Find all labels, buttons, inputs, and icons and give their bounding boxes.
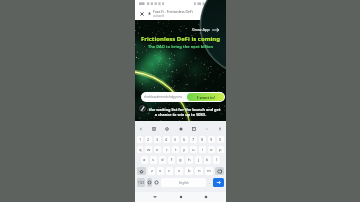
- staticText: 1: [139, 137, 142, 142]
- button[interactable]: c: [166, 167, 173, 175]
- staticText: 8: [201, 137, 204, 142]
- staticText: 2: [147, 137, 150, 142]
- staticText: us.fuse.fi: [153, 14, 164, 18]
- button[interactable]: q: [137, 146, 143, 153]
- staticText: m: [207, 168, 211, 174]
- button[interactable]: 9: [208, 136, 215, 143]
- button[interactable]: e: [154, 146, 161, 153]
- button[interactable]: 5: [172, 136, 179, 143]
- button[interactable]: 2: [145, 136, 152, 143]
- staticText: 4: [165, 137, 168, 142]
- button[interactable]: y: [181, 146, 188, 153]
- staticText: 9: [210, 137, 213, 142]
- staticText: g: [179, 157, 182, 163]
- button[interactable]: Keyboard tool: [203, 125, 211, 133]
- button[interactable]: d: [159, 156, 166, 164]
- staticText: q: [139, 147, 142, 153]
- button[interactable]: English: [161, 178, 206, 187]
- button[interactable]: a: [141, 156, 148, 164]
- staticText: h: [188, 157, 191, 163]
- button[interactable]: Grow App: [191, 26, 220, 33]
- button[interactable]: 0: [217, 136, 224, 143]
- staticText: English: [179, 181, 189, 185]
- staticText: c: [168, 168, 171, 174]
- staticText: 3: [156, 137, 159, 142]
- button[interactable]: p: [217, 146, 224, 153]
- staticText: shehbazahmedxhdgyneo: [144, 95, 182, 99]
- button[interactable]: v: [175, 167, 183, 175]
- button[interactable]: f: [168, 156, 175, 164]
- staticText: p: [219, 147, 222, 153]
- button[interactable]: Recent apps: [201, 192, 211, 202]
- button[interactable]: z: [148, 167, 155, 175]
- staticText: s: [152, 157, 155, 163]
- button[interactable]: 8: [199, 136, 206, 143]
- button[interactable]: Period: [208, 178, 211, 187]
- staticText: I want in!: [197, 95, 215, 100]
- staticText: Grow App: [192, 27, 210, 32]
- button[interactable]: Languages: [147, 178, 152, 187]
- staticText: l: [216, 157, 218, 163]
- staticText: b: [188, 168, 191, 174]
- staticText: k: [206, 157, 209, 163]
- button[interactable]: n: [195, 167, 203, 175]
- staticText: d: [161, 157, 164, 163]
- staticText: f: [171, 157, 173, 163]
- button[interactable]: h: [186, 156, 193, 164]
- button[interactable]: Shift: [137, 167, 146, 175]
- button[interactable]: ?123: [137, 178, 145, 187]
- staticText: r: [166, 147, 168, 153]
- button[interactable]: Backspace: [215, 167, 224, 175]
- button[interactable]: Keyboard tool: [216, 125, 224, 133]
- button[interactable]: Keyboard tool: [190, 125, 198, 133]
- staticText: z: [151, 168, 153, 174]
- button[interactable]: u: [190, 146, 197, 153]
- staticText: a: [143, 157, 146, 163]
- button[interactable]: Keyboard tool: [163, 125, 171, 133]
- staticText: .: [209, 180, 211, 185]
- button[interactable]: shehbazahmedxhdgyneo: [141, 92, 188, 102]
- button[interactable]: g: [177, 156, 184, 164]
- staticText: e: [156, 147, 159, 153]
- button[interactable]: I want in!: [187, 93, 224, 101]
- button[interactable]: 7: [190, 136, 197, 143]
- staticText: The DAO to bring the next billion: [135, 44, 226, 49]
- button[interactable]: Edit: [137, 103, 148, 114]
- button[interactable]: s: [150, 156, 157, 164]
- button[interactable]: x: [157, 167, 164, 175]
- button[interactable]: Keyboard tool: [177, 125, 185, 133]
- button[interactable]: Keyboard tool: [137, 125, 145, 133]
- button[interactable]: m: [205, 167, 213, 175]
- button[interactable]: r: [163, 146, 170, 153]
- button[interactable]: o: [208, 146, 215, 153]
- staticText: y: [183, 147, 186, 153]
- button[interactable]: i: [199, 146, 206, 153]
- button[interactable]: b: [185, 167, 193, 175]
- button[interactable]: k: [204, 156, 211, 164]
- button[interactable]: 6: [181, 136, 188, 143]
- staticText: Join the waiting list for the launch and…: [137, 107, 224, 117]
- staticText: v: [178, 168, 181, 174]
- button[interactable]: 4: [163, 136, 170, 143]
- staticText: 6: [183, 137, 186, 142]
- staticText: n: [198, 168, 201, 174]
- staticText: j: [198, 157, 200, 163]
- staticText: u: [192, 147, 195, 153]
- button[interactable]: l: [213, 156, 220, 164]
- button[interactable]: Go: [213, 178, 224, 187]
- button[interactable]: Keyboard tool: [150, 125, 158, 133]
- staticText: x: [159, 168, 162, 174]
- button[interactable]: 1: [137, 136, 143, 143]
- button[interactable]: 3: [154, 136, 161, 143]
- button[interactable]: Back: [150, 192, 160, 202]
- button[interactable]: j: [195, 156, 202, 164]
- button[interactable]: Close: [137, 7, 146, 20]
- button[interactable]: Emoji: [154, 178, 159, 187]
- button[interactable]: w: [145, 146, 152, 153]
- button[interactable]: Home: [176, 192, 186, 202]
- button[interactable]: t: [172, 146, 179, 153]
- staticText: Fuse.Fi - Frictionless DeFi: [153, 9, 193, 14]
- staticText: 7: [192, 137, 195, 142]
